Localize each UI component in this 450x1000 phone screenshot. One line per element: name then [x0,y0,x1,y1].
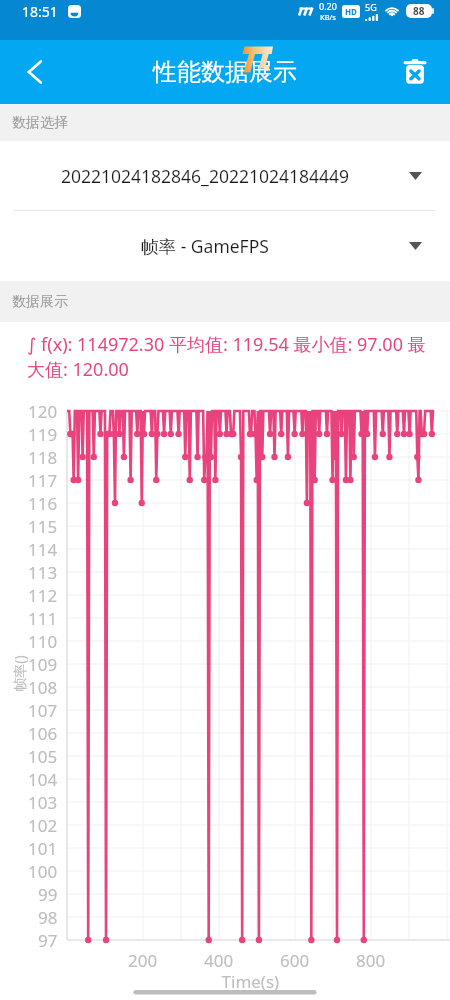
staticText: 数据展示 [12,293,68,311]
button[interactable]: Back [12,50,56,94]
staticText: 20221024182846_20221024184449 [8,164,402,188]
staticText: KB/s [320,12,336,22]
button[interactable]: 20221024182846_20221024184449 [0,141,450,210]
staticText: 88 [413,4,425,18]
staticText: ∫ f(x): 114972.30 平均值: 119.54 最小值: 97.00… [27,332,442,381]
staticText: HD [345,6,357,17]
staticText: 性能数据展示 [153,57,297,87]
button[interactable]: 帧率 - GameFPS [0,211,450,281]
staticText: 帧率 - GameFPS [8,234,402,258]
button[interactable]: Delete [394,51,436,93]
staticText: 数据选择 [12,114,68,132]
staticText: 18:51 [22,2,58,21]
staticText: 5G [365,1,377,13]
staticText: 0.20 [319,0,337,12]
